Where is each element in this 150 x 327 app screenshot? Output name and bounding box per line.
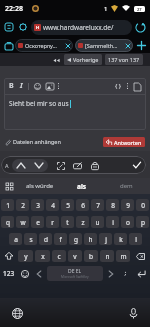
staticText: als würde bbox=[26, 182, 54, 190]
button[interactable]: 4 bbox=[46, 199, 59, 211]
button[interactable]: Scroll down bbox=[30, 159, 48, 172]
button[interactable]: 7 bbox=[91, 199, 104, 211]
button[interactable]: v bbox=[68, 250, 82, 262]
button[interactable]: q bbox=[1, 216, 14, 228]
staticText: c bbox=[57, 252, 61, 261]
button[interactable]: k bbox=[114, 233, 127, 245]
button[interactable]: Stickers bbox=[88, 159, 101, 172]
button[interactable]: Resize keyboard bbox=[54, 159, 67, 172]
button[interactable]: 8 bbox=[106, 199, 119, 211]
button[interactable]: als bbox=[62, 178, 102, 194]
button[interactable] bbox=[126, 82, 129, 90]
button[interactable]: Preview bbox=[133, 82, 142, 91]
button[interactable]: Scroll up bbox=[12, 159, 30, 172]
button[interactable]: m bbox=[116, 250, 130, 262]
button[interactable]: Voice input bbox=[125, 305, 141, 321]
staticText: u bbox=[95, 218, 100, 227]
button[interactable]: a bbox=[9, 233, 22, 245]
button[interactable]: g bbox=[69, 233, 82, 245]
button[interactable]: Оскотерлу… bbox=[15, 39, 73, 52]
button[interactable]: Clipboard bbox=[71, 159, 84, 172]
button[interactable]: Text size bbox=[3, 161, 11, 169]
button[interactable]: B bbox=[8, 81, 15, 91]
button[interactable]: H bbox=[31, 20, 132, 35]
staticText: z bbox=[81, 218, 85, 227]
staticText: t bbox=[66, 218, 69, 227]
staticText: 137 von 137 bbox=[108, 56, 140, 63]
staticText: 4 bbox=[51, 201, 55, 210]
button[interactable]: s bbox=[24, 233, 37, 245]
button[interactable]: Keyboard menu bbox=[0, 178, 18, 194]
button[interactable]: n bbox=[100, 250, 114, 262]
staticText: o bbox=[126, 218, 130, 227]
button[interactable]: dem bbox=[102, 178, 150, 194]
button[interactable]: b bbox=[84, 250, 98, 262]
button[interactable]: o bbox=[121, 216, 134, 228]
button[interactable]: p bbox=[136, 216, 149, 228]
staticText: H bbox=[36, 25, 40, 30]
button[interactable]: Enter bbox=[133, 266, 149, 281]
button[interactable]: c bbox=[52, 250, 66, 262]
button[interactable]: 6 bbox=[76, 199, 89, 211]
staticText: a bbox=[14, 235, 18, 244]
staticText: g bbox=[74, 235, 78, 244]
staticText: w bbox=[20, 218, 26, 227]
button[interactable]: Change language bbox=[9, 305, 25, 321]
staticText: v bbox=[73, 252, 77, 261]
button[interactable]: f bbox=[54, 233, 67, 245]
button[interactable]: Reader mode bbox=[3, 21, 15, 33]
staticText: DE EL bbox=[68, 268, 82, 275]
staticText: n bbox=[105, 252, 110, 261]
button[interactable]: Tab list bbox=[2, 39, 15, 52]
staticText: 7 bbox=[96, 201, 100, 210]
button[interactable]: y bbox=[18, 250, 33, 262]
button[interactable]: Comma bbox=[119, 266, 131, 281]
button[interactable]: 3 bbox=[31, 199, 44, 211]
button[interactable]: l bbox=[129, 233, 142, 245]
button[interactable]: [Sammelth… bbox=[75, 39, 133, 52]
button[interactable]: w bbox=[16, 216, 29, 228]
button[interactable]: als würde bbox=[18, 178, 62, 194]
button[interactable]: 1 bbox=[1, 199, 14, 211]
button[interactable]: x bbox=[35, 250, 50, 262]
button[interactable]: Numbers bbox=[1, 266, 17, 281]
button[interactable]: u bbox=[91, 216, 104, 228]
button[interactable]: i bbox=[106, 216, 119, 228]
button[interactable]: Emoji bbox=[33, 82, 42, 91]
staticText: www.hardwareluxx.de/communi bbox=[43, 23, 129, 32]
button[interactable]: d bbox=[39, 233, 52, 245]
staticText: Vorherige bbox=[73, 56, 99, 63]
button[interactable]: j bbox=[99, 233, 112, 245]
button[interactable]: 0 bbox=[136, 199, 149, 211]
button[interactable]: h bbox=[84, 233, 97, 245]
button[interactable]: e bbox=[31, 216, 44, 228]
button[interactable]: Vorherige bbox=[64, 54, 102, 65]
button[interactable]: { } bbox=[115, 82, 122, 90]
button[interactable]: Antworten bbox=[103, 137, 145, 147]
button[interactable]: Reload bbox=[133, 20, 147, 34]
button[interactable]: 9 bbox=[121, 199, 134, 211]
staticText: 22:28 bbox=[5, 4, 23, 14]
button[interactable]: Previous result bbox=[50, 54, 62, 66]
button[interactable]: Cursor left bbox=[33, 266, 45, 281]
staticText: j bbox=[105, 235, 107, 244]
button[interactable]: Backspace bbox=[132, 250, 149, 262]
button[interactable]: 5 bbox=[61, 199, 74, 211]
button[interactable] bbox=[57, 82, 60, 90]
button[interactable]: Cursor right bbox=[105, 266, 117, 281]
button[interactable]: Settings bbox=[17, 21, 29, 33]
button[interactable]: t bbox=[61, 216, 74, 228]
button[interactable]: z bbox=[76, 216, 89, 228]
button[interactable]: r bbox=[46, 216, 59, 228]
button[interactable]: New tab bbox=[134, 38, 148, 52]
button[interactable]: DE EL bbox=[47, 266, 103, 281]
button[interactable]: I bbox=[19, 81, 24, 91]
button[interactable]: Dateien anhängen bbox=[5, 138, 61, 145]
button[interactable]: Emoji bbox=[19, 266, 31, 281]
button[interactable]: Done bbox=[130, 158, 144, 172]
button[interactable]: 2 bbox=[16, 199, 29, 211]
button[interactable]: Insert image bbox=[45, 82, 54, 91]
button[interactable]: Shift bbox=[1, 250, 16, 262]
staticText: Оскотерлу… bbox=[25, 42, 64, 49]
button[interactable]: 137 von 137 bbox=[105, 54, 143, 65]
